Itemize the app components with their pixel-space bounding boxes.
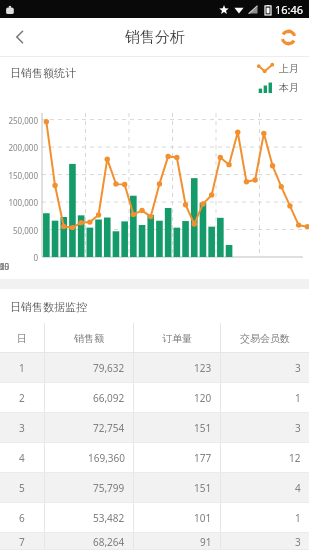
staticText: 91	[200, 535, 212, 549]
button[interactable]: 3	[0, 413, 309, 443]
staticText: 3	[19, 421, 25, 435]
staticText: 4	[295, 481, 301, 495]
staticText: 日销售额统计	[10, 66, 76, 80]
staticText: 1	[19, 361, 25, 375]
button[interactable]: 5	[0, 473, 309, 503]
button[interactable]: Refresh	[267, 18, 309, 56]
button[interactable]: 2	[0, 383, 309, 413]
staticText: 53,482	[93, 511, 125, 525]
staticText: 16:46	[275, 2, 304, 17]
staticText: 3	[295, 361, 301, 375]
staticText: 10	[0, 261, 309, 272]
staticText: 本月	[279, 81, 299, 94]
staticText: 50,000	[0, 225, 38, 236]
button[interactable]: 6	[0, 503, 309, 533]
staticText: 66,092	[93, 391, 125, 405]
staticText: 72,754	[93, 421, 125, 435]
staticText: 1	[295, 391, 301, 405]
staticText: 日销售数据监控	[10, 300, 87, 314]
staticText: 169,360	[88, 451, 125, 465]
staticText: 日	[17, 332, 27, 345]
staticText: 101	[194, 511, 212, 525]
staticText: 5	[19, 481, 25, 495]
staticText: 68,264	[93, 535, 125, 549]
staticText: 上月	[279, 62, 299, 75]
button[interactable]: 4	[0, 443, 309, 473]
button[interactable]: Back	[0, 18, 40, 56]
staticText: 15	[0, 261, 309, 272]
staticText: 3	[295, 421, 301, 435]
staticText: 151	[194, 421, 212, 435]
staticText: 177	[194, 451, 212, 465]
staticText: 2	[19, 391, 25, 405]
staticText: 销售额	[74, 332, 104, 345]
staticText: 12	[289, 451, 301, 465]
staticText: 123	[194, 361, 212, 375]
staticText: 6	[19, 511, 25, 525]
staticText: 75,799	[93, 481, 125, 495]
staticText: 订单量	[162, 332, 192, 345]
staticText: 20	[0, 261, 309, 272]
staticText: 1	[295, 511, 301, 525]
staticText: 200,000	[0, 142, 38, 153]
staticText: 151	[194, 481, 212, 495]
staticText: 250,000	[0, 115, 38, 126]
staticText: 销售分析	[125, 28, 185, 47]
staticText: 79,632	[93, 361, 125, 375]
staticText: 5	[0, 261, 309, 272]
staticText: 0	[0, 261, 309, 272]
staticText: 4	[19, 451, 25, 465]
button[interactable]: 7	[0, 533, 309, 550]
staticText: 0	[0, 252, 38, 263]
staticText: 3	[295, 535, 301, 549]
button[interactable]: 1	[0, 353, 309, 383]
staticText: 交易会员数	[240, 332, 290, 345]
staticText: 150,000	[0, 170, 38, 181]
staticText: 7	[19, 535, 25, 549]
staticText: 25	[0, 261, 309, 272]
staticText: 120	[194, 391, 212, 405]
staticText: 100,000	[0, 197, 38, 208]
